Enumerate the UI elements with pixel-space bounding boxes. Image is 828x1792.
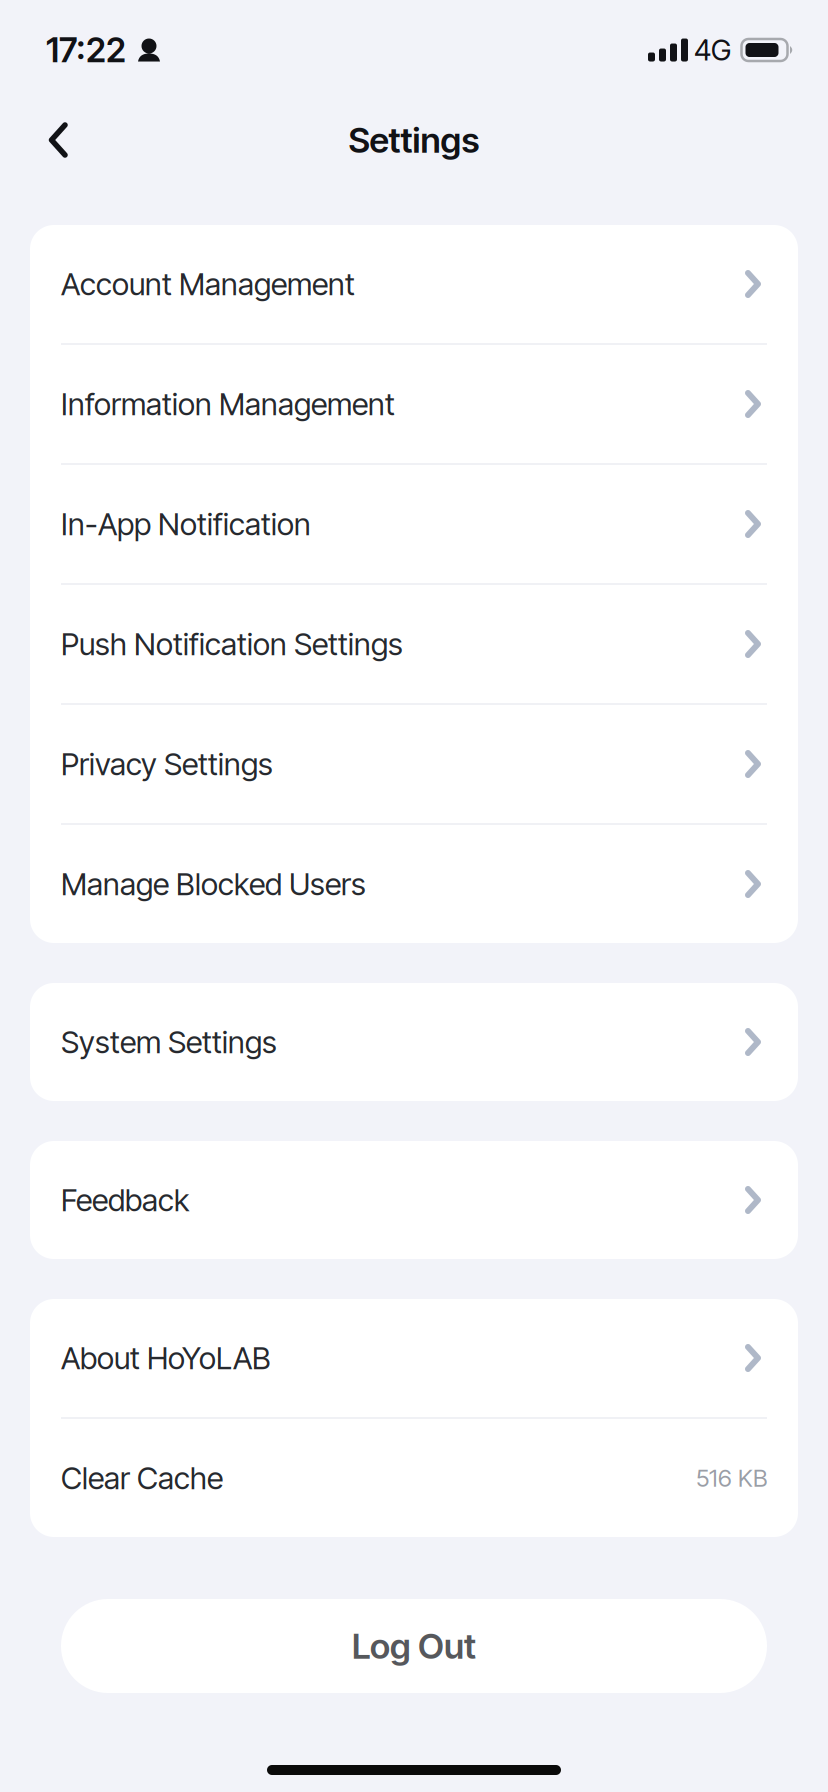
button[interactable]: Push Notification Settings <box>30 585 798 703</box>
staticText: 4G <box>694 32 731 68</box>
button[interactable]: Clear Cache <box>30 1419 798 1537</box>
button[interactable]: System Settings <box>30 983 798 1101</box>
button[interactable]: Feedback <box>30 1141 798 1259</box>
staticText: In-App Notification <box>61 505 311 542</box>
button[interactable]: About HoYoLAB <box>30 1299 798 1417</box>
staticText: Account Management <box>61 265 355 302</box>
staticText: Clear Cache <box>61 1459 223 1496</box>
staticText: System Settings <box>61 1023 277 1060</box>
staticText: Settings <box>348 119 479 161</box>
button[interactable]: Privacy Settings <box>30 705 798 823</box>
staticText: 516 KB <box>696 1463 767 1492</box>
button[interactable]: Account Management <box>30 225 798 343</box>
button[interactable]: Log Out <box>61 1599 767 1693</box>
staticText: Feedback <box>61 1181 189 1218</box>
staticText: Log Out <box>352 1625 476 1667</box>
staticText: Push Notification Settings <box>61 625 403 662</box>
staticText: 17:22 <box>46 29 126 70</box>
staticText: About HoYoLAB <box>61 1339 271 1376</box>
staticText: Privacy Settings <box>61 745 273 782</box>
button[interactable]: Manage Blocked Users <box>30 825 798 943</box>
button[interactable]: In-App Notification <box>30 465 798 583</box>
button[interactable]: Information Management <box>30 345 798 463</box>
staticText: Manage Blocked Users <box>61 865 366 902</box>
button[interactable]: Back <box>0 102 90 178</box>
staticText: Information Management <box>61 385 395 422</box>
